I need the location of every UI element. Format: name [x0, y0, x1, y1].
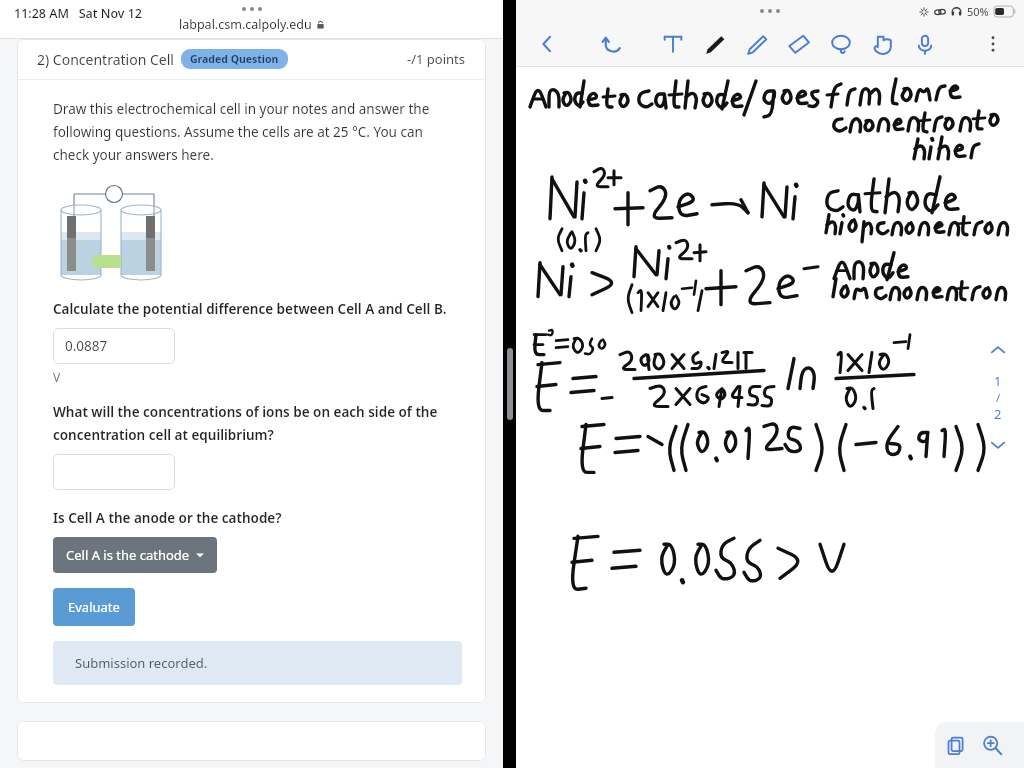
- button[interactable]: Undo: [600, 31, 626, 57]
- staticText: Evaluate: [68, 598, 120, 616]
- button[interactable]: Previous page: [986, 338, 1010, 362]
- button[interactable]: Highlighter: [744, 31, 770, 57]
- button[interactable]: Next page: [986, 433, 1010, 457]
- staticText: 2: [994, 405, 1002, 423]
- staticText: What will the concentrations of ions be …: [53, 403, 462, 444]
- staticText: Graded Question: [190, 52, 279, 66]
- button[interactable]: Pen: [702, 31, 728, 57]
- button[interactable]: 0.0887: [53, 328, 175, 364]
- button[interactable]: Evaluate: [53, 588, 135, 626]
- button[interactable]: Pages: [945, 734, 967, 756]
- staticText: 2) Concentration Cell: [37, 50, 174, 69]
- staticText: Submission recorded.: [75, 654, 208, 672]
- button[interactable]: Text tool: [660, 31, 686, 57]
- button[interactable]: Eraser: [786, 31, 812, 57]
- staticText: 1: [994, 372, 1002, 390]
- button[interactable]: Hand: [870, 31, 896, 57]
- staticText: Draw this electrochemical cell in your n…: [53, 100, 462, 164]
- button[interactable]: [53, 454, 175, 490]
- staticText: Is Cell A the anode or the cathode?: [53, 509, 282, 527]
- button[interactable]: More options: [980, 31, 1006, 57]
- staticText: -/1 points: [407, 50, 466, 68]
- button[interactable]: Zoom in: [981, 734, 1003, 756]
- staticText: Cell A is the cathode: [66, 546, 190, 564]
- staticText: Calculate the potential difference betwe…: [53, 300, 462, 318]
- staticText: 0.0887: [65, 337, 108, 355]
- button[interactable]: Cell A is the cathode: [53, 537, 217, 573]
- staticText: 11:28 AM Sat Nov 12: [14, 5, 142, 22]
- staticText: labpal.csm.calpoly.edu: [179, 16, 312, 33]
- staticText: /: [996, 390, 1001, 405]
- button[interactable]: Microphone: [912, 31, 938, 57]
- staticText: V: [53, 369, 61, 385]
- button[interactable]: Back: [534, 31, 560, 57]
- staticText: 50%: [967, 4, 989, 19]
- button[interactable]: Lasso: [828, 31, 854, 57]
